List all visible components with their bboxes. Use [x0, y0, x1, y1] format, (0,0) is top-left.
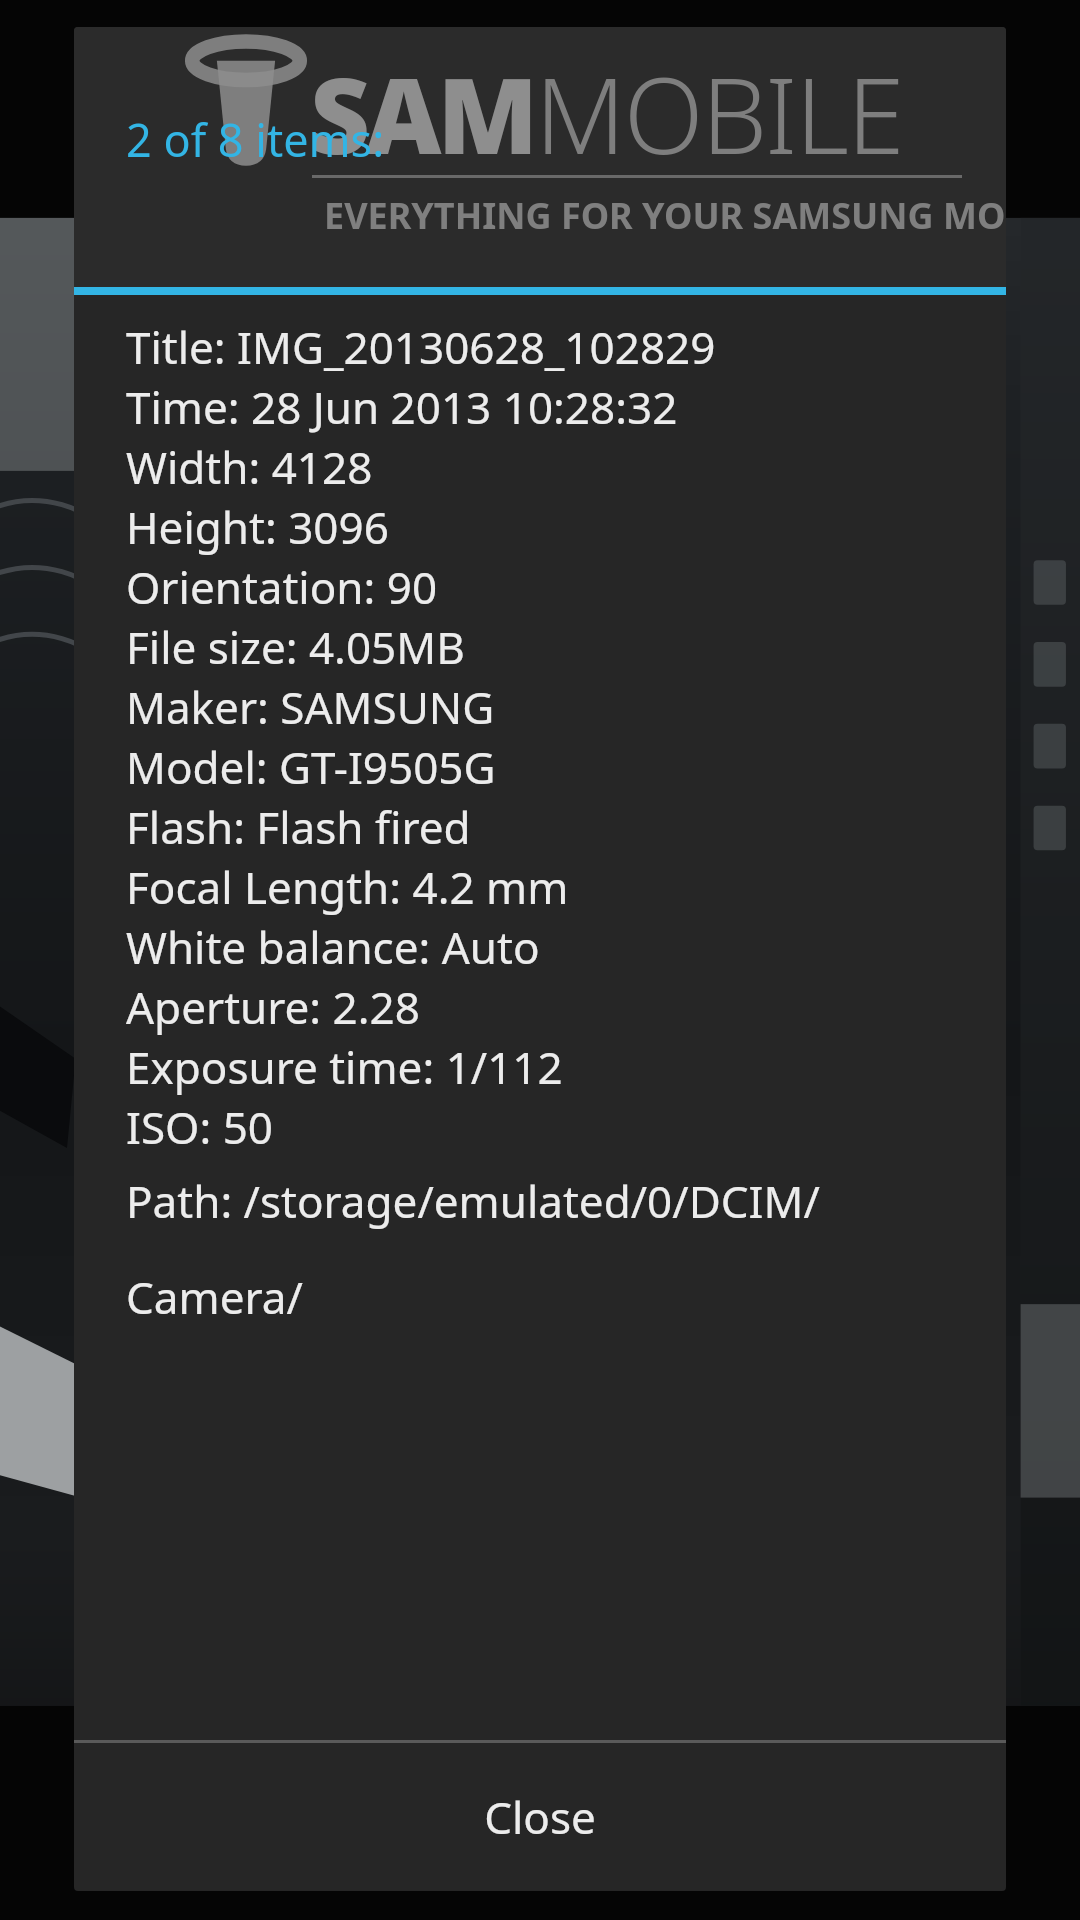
staticText: Title: IMG_20130628_102829 [126, 317, 978, 377]
staticText: Width: 4128 [126, 437, 978, 497]
staticText: Model: GT-I9505G [126, 737, 978, 797]
staticText: Time: 28 Jun 2013 10:28:32 [126, 377, 978, 437]
staticText: Flash: Flash fired [126, 797, 978, 857]
staticText: Close [484, 1787, 596, 1847]
staticText: 2 of 8 items: [126, 109, 385, 170]
staticText: Height: 3096 [126, 497, 978, 557]
staticText: Aperture: 2.28 [126, 977, 978, 1037]
staticText: Focal Length: 4.2 mm [126, 857, 978, 917]
staticText: Path: /storage/emulated/0/DCIM/Camera/ [126, 1171, 978, 1327]
staticText: EVERYTHING FOR YOUR SAMSUNG MOBILE [324, 191, 1006, 240]
staticText: White balance: Auto [126, 917, 978, 977]
staticText: Maker: SAMSUNG [126, 677, 978, 737]
staticText: Orientation: 90 [126, 557, 978, 617]
staticText: ISO: 50 [126, 1097, 978, 1157]
button[interactable]: Close [74, 1743, 1006, 1891]
staticText: Exposure time: 1/112 [126, 1037, 978, 1097]
staticText: File size: 4.05MB [126, 617, 978, 677]
staticText: MOBILE [535, 43, 903, 185]
staticText: SAM [310, 43, 535, 185]
